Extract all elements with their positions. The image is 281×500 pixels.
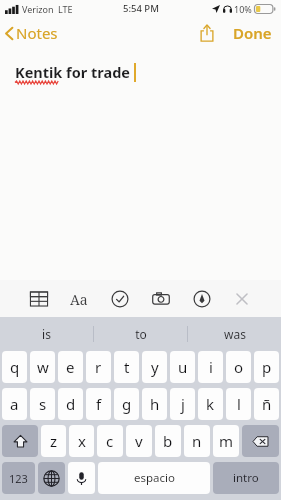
button[interactable]: z [41,425,66,457]
button[interactable]: n [184,425,210,457]
button[interactable]: q [2,351,27,383]
staticText: r [95,357,102,377]
button[interactable]: to [94,317,187,351]
button[interactable]: g [114,388,139,420]
staticText: was [224,326,246,342]
button[interactable]: e [58,351,83,383]
button[interactable]: w [30,351,55,383]
button[interactable]: h [142,388,167,420]
staticText: Notes [16,23,58,43]
staticText: 10% [234,3,252,15]
staticText: q [10,357,20,377]
button[interactable]: Camera [149,287,173,311]
button[interactable]: Markup [190,287,214,311]
button[interactable]: v [126,425,152,457]
staticText: Aa [70,290,88,309]
staticText: u [178,357,188,377]
button[interactable]: Kentik for trade [0,48,281,280]
staticText: g [122,394,132,414]
staticText: c [106,431,114,451]
button[interactable]: Table [27,287,51,311]
staticText: LTE [58,3,73,15]
staticText: x [78,431,86,451]
staticText: espacio [134,470,175,486]
staticText: ñ [262,394,272,414]
button[interactable]: Text format [67,287,91,311]
button[interactable]: d [58,388,83,420]
staticText: Done [233,23,272,43]
button[interactable]: o [226,351,251,383]
button[interactable]: intro [213,462,279,494]
button[interactable]: 123 [2,462,35,494]
button[interactable]: s [30,388,55,420]
staticText: a [10,394,19,414]
button[interactable]: p [254,351,279,383]
staticText: w [37,357,49,377]
button[interactable]: espacio [98,462,210,494]
staticText: 123 [9,471,28,486]
button[interactable]: Shift [2,425,38,457]
staticText: n [192,431,202,451]
button[interactable]: a [2,388,27,420]
staticText: z [50,431,58,451]
button[interactable]: r [86,351,111,383]
staticText: m [219,431,234,451]
button[interactable]: Checklist [108,287,132,311]
staticText: l [237,394,241,414]
staticText: Kentik for trade [15,62,131,82]
button[interactable]: Backspace [242,425,279,457]
button[interactable]: k [198,388,223,420]
staticText: t [124,357,130,377]
button[interactable]: m [213,425,239,457]
staticText: j [181,394,185,414]
staticText: to [135,326,147,342]
button[interactable]: Dictation [68,462,95,494]
button[interactable]: i [198,351,223,383]
button[interactable]: Done [230,20,275,46]
staticText: i [209,357,213,377]
button[interactable]: j [170,388,195,420]
button[interactable]: Close keyboard [230,287,254,311]
button[interactable]: f [86,388,111,420]
button[interactable]: is [0,317,93,351]
button[interactable]: u [170,351,195,383]
staticText: e [66,357,75,377]
button[interactable]: l [226,388,251,420]
staticText: p [262,357,272,377]
button[interactable]: t [114,351,139,383]
button[interactable]: b [155,425,181,457]
staticText: f [96,394,102,414]
staticText: b [163,431,173,451]
staticText: d [66,394,76,414]
staticText: Verizon [22,3,54,15]
staticText: v [135,431,143,451]
staticText: intro [233,470,259,486]
button[interactable]: Share [194,21,220,45]
button[interactable]: Switch keyboard [38,462,65,494]
staticText: o [234,357,244,377]
button[interactable]: ñ [254,388,279,420]
button[interactable]: y [142,351,167,383]
button[interactable]: was [188,317,281,351]
button[interactable]: x [69,425,94,457]
staticText: y [151,357,159,377]
staticText: s [39,394,47,414]
staticText: 5:54 PM [123,2,159,15]
button[interactable]: c [97,425,123,457]
staticText: h [150,394,160,414]
button[interactable]: Notes [0,19,66,47]
staticText: is [42,326,51,342]
staticText: k [206,394,215,414]
